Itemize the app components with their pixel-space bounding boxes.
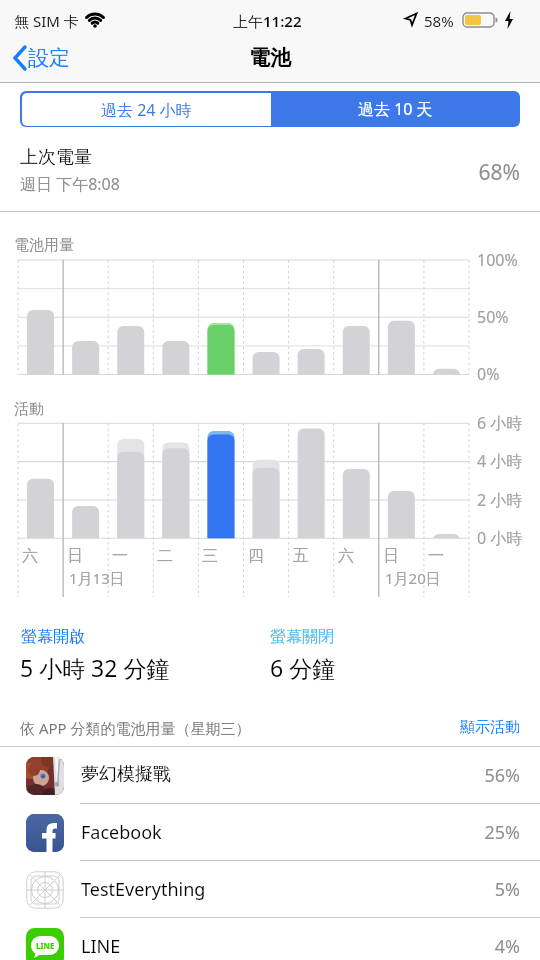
staticText: 一	[428, 546, 444, 566]
staticText: 100%	[477, 249, 518, 271]
button[interactable]: 過去 10 天	[270, 91, 520, 127]
staticText: 三	[202, 546, 218, 566]
staticText: 無 SIM 卡	[14, 11, 79, 31]
staticText: 50%	[477, 306, 509, 328]
staticText: 二	[157, 546, 173, 566]
staticText: 活動	[14, 400, 44, 419]
staticText: 1月20日	[385, 568, 441, 588]
button[interactable]: LINE	[0, 918, 540, 960]
staticText: 上午11:22	[233, 11, 302, 31]
staticText: 六	[22, 546, 38, 566]
button[interactable]: Facebook	[0, 804, 540, 861]
staticText: 四	[248, 546, 264, 566]
staticText: 56%	[400, 763, 520, 788]
staticText: Facebook	[81, 820, 162, 845]
staticText: 電池	[249, 45, 291, 71]
staticText: LINE	[81, 934, 121, 959]
staticText: 5 小時 32 分鐘	[20, 652, 170, 683]
staticText: 2 小時	[477, 489, 523, 511]
staticText: 螢幕關閉	[270, 627, 334, 647]
button[interactable]: 設定	[12, 38, 70, 78]
staticText: LINE	[36, 940, 55, 951]
staticText: 電池用量	[14, 236, 74, 255]
staticText: 夢幻模擬戰	[81, 763, 171, 786]
staticText: 螢幕開啟	[21, 627, 85, 647]
staticText: 4 小時	[477, 450, 523, 472]
button[interactable]: TestEverything	[0, 861, 540, 918]
staticText: 4%	[400, 934, 520, 959]
staticText: 5%	[400, 877, 520, 902]
staticText: 日	[383, 546, 399, 566]
staticText: 設定	[28, 45, 70, 71]
button[interactable]: 過去 24 小時	[22, 93, 271, 126]
staticText: 過去 10 天	[358, 98, 433, 120]
staticText: TestEverything	[81, 877, 206, 902]
staticText: 6 分鐘	[270, 652, 336, 683]
staticText: 上次電量	[20, 146, 92, 169]
staticText: 五	[293, 546, 309, 566]
staticText: 25%	[400, 820, 520, 845]
staticText: 68%	[400, 158, 520, 187]
staticText: 6 小時	[477, 412, 523, 434]
staticText: 六	[338, 546, 354, 566]
staticText: 依 APP 分類的電池用量（星期三）	[20, 718, 251, 738]
button[interactable]: 夢幻模擬戰	[0, 747, 540, 804]
staticText: 0%	[477, 363, 500, 385]
staticText: 58%	[424, 11, 454, 31]
staticText: 0 小時	[477, 527, 523, 549]
staticText: 一	[112, 546, 128, 566]
button[interactable]: 顯示活動	[400, 718, 520, 737]
staticText: 日	[67, 546, 83, 566]
staticText: 過去 24 小時	[101, 99, 192, 121]
staticText: 1月13日	[69, 568, 125, 588]
staticText: 週日 下午8:08	[20, 173, 120, 195]
